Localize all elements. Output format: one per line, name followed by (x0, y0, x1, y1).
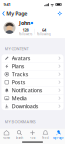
staticText: 9:41 (3, 2, 10, 7)
staticText: 64 (42, 27, 46, 32)
staticText: Posts (12, 79, 26, 86)
button[interactable]: Home (0, 129, 13, 140)
staticText: MY CONTENT (4, 46, 28, 51)
staticText: Avatars (12, 55, 31, 62)
button[interactable]: Search (13, 129, 26, 140)
staticText: Feed (42, 136, 49, 140)
button[interactable]: Tracks (1, 70, 63, 78)
button[interactable]: Notifications (1, 86, 63, 94)
button[interactable]: Plans (1, 62, 63, 70)
button[interactable]: Back (0, 9, 6, 18)
staticText: Plans (12, 63, 25, 70)
staticText: Notifications (12, 87, 43, 94)
staticText: Search (15, 136, 23, 140)
staticText: Media (12, 95, 27, 102)
button[interactable]: Media (1, 94, 63, 102)
button[interactable]: Settings (55, 9, 65, 18)
button[interactable]: Avatars (1, 54, 63, 62)
button[interactable]: My Page (52, 129, 65, 140)
staticText: 128 (22, 27, 28, 32)
staticText: My Page (53, 136, 64, 140)
staticText: Following (37, 32, 51, 36)
button[interactable]: Downloads (1, 102, 63, 110)
button[interactable]: Posts (1, 78, 63, 86)
button[interactable]: Post (26, 129, 39, 140)
staticText: Downloads (12, 103, 39, 110)
button[interactable]: Feed (39, 129, 52, 140)
staticText: My Page (6, 10, 27, 17)
staticText: MY BOOKMARKS (4, 119, 35, 124)
staticText: Home (2, 136, 10, 140)
staticText: John (19, 19, 30, 27)
staticText: Followers (19, 32, 32, 36)
staticText: Tracks (12, 71, 29, 78)
staticText: Post (29, 136, 35, 140)
